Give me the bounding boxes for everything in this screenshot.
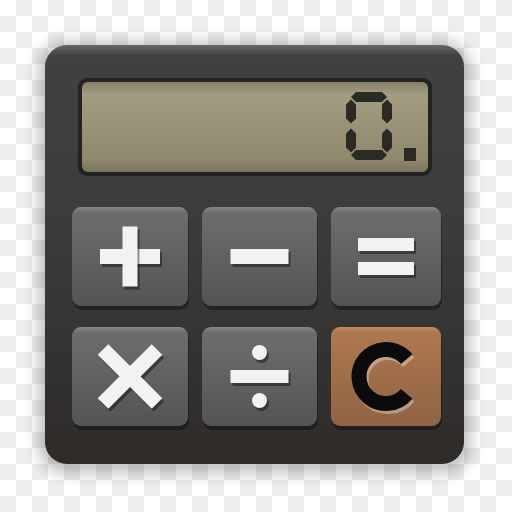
button[interactable]: Clear: [331, 327, 441, 426]
button[interactable]: Divide: [202, 327, 317, 426]
button[interactable]: Plus: [72, 207, 188, 306]
button[interactable]: Minus: [202, 207, 317, 306]
button[interactable]: Multiply: [72, 327, 188, 426]
button[interactable]: Equals: [331, 207, 441, 306]
other: Display 0.: [82, 82, 428, 172]
